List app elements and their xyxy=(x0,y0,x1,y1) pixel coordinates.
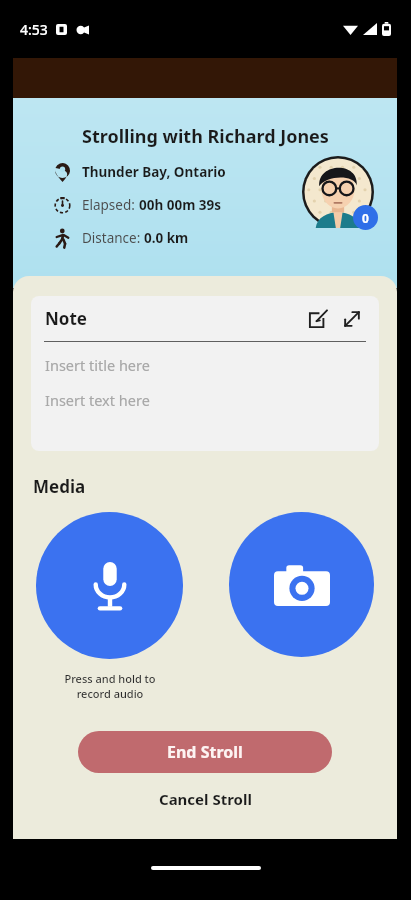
button[interactable]: Record audio xyxy=(36,512,183,659)
staticText: Distance: xyxy=(82,229,144,247)
staticText: 00h 00m 39s xyxy=(139,196,222,214)
staticText: End Stroll xyxy=(167,741,243,763)
button[interactable]: Take photo xyxy=(229,512,374,657)
staticText: Elapsed: xyxy=(82,196,139,214)
staticText: Note xyxy=(45,307,87,330)
staticText: Press and hold to record audio xyxy=(64,671,156,701)
button[interactable]: Note xyxy=(31,296,379,451)
button[interactable]: Edit note xyxy=(305,306,331,332)
staticText: Insert title here xyxy=(45,355,150,375)
staticText: Thunder Bay, Ontario xyxy=(82,163,226,181)
staticText: Strolling with Richard Jones xyxy=(82,124,329,149)
staticText: Insert text here xyxy=(45,390,150,410)
staticText: Cancel Stroll xyxy=(159,789,252,809)
button[interactable]: Cancel Stroll xyxy=(13,789,397,809)
staticText: 4:53 xyxy=(20,20,48,39)
button[interactable]: End Stroll xyxy=(78,731,332,773)
staticText: Media xyxy=(33,475,86,498)
button[interactable]: Expand note xyxy=(339,306,365,332)
staticText: 0.0 km xyxy=(144,229,189,247)
staticText: 0 xyxy=(362,210,369,226)
